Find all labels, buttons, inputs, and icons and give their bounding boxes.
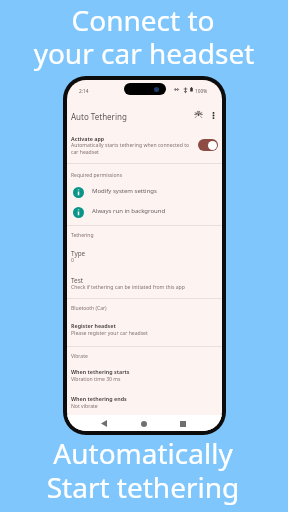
- staticText: Auto Tethering: [71, 111, 127, 122]
- button[interactable]: When tethering ends: [67, 392, 222, 412]
- button[interactable]: Recents: [175, 415, 191, 431]
- button[interactable]: Activate app: [67, 130, 222, 160]
- button[interactable]: Report a bug: [192, 108, 205, 121]
- button[interactable]: More options: [207, 109, 220, 122]
- staticText: 100%: [195, 88, 208, 95]
- button[interactable]: Modify system settings: [67, 185, 222, 199]
- staticText: When tethering starts: [71, 368, 130, 375]
- staticText: 2:14: [79, 88, 89, 95]
- staticText: Modify system settings: [92, 187, 157, 195]
- staticText: Automatically starts tethering when conn…: [71, 142, 190, 156]
- button[interactable]: Back: [96, 415, 112, 431]
- staticText: Always run in background: [92, 207, 166, 215]
- staticText: Connect to: [0, 1, 287, 39]
- staticText: Vibration time 30 ms: [71, 376, 121, 383]
- staticText: Please register your car headset: [71, 330, 148, 337]
- staticText: Required permissions: [71, 172, 123, 179]
- staticText: 0: [71, 257, 74, 264]
- staticText: Type: [71, 249, 86, 258]
- staticText: Start tethering: [0, 468, 287, 506]
- staticText: Not vibrate: [71, 403, 98, 410]
- button[interactable]: Type: [67, 246, 222, 266]
- staticText: When tethering ends: [71, 395, 127, 402]
- button[interactable]: Home: [136, 415, 152, 431]
- staticText: your car headset: [0, 34, 288, 72]
- staticText: Test: [71, 276, 84, 285]
- staticText: Register headset: [71, 322, 116, 329]
- button[interactable]: Always run in background: [67, 205, 222, 219]
- button[interactable]: Register headset: [67, 319, 222, 339]
- staticText: Activate app: [71, 135, 105, 142]
- staticText: Tethering: [71, 232, 94, 239]
- staticText: Check if tethering can be initiated from…: [71, 284, 185, 291]
- staticText: Bluetooth (Car): [71, 305, 107, 312]
- staticText: Vibrate: [71, 353, 88, 360]
- staticText: Automatically: [0, 434, 287, 472]
- button[interactable]: When tethering starts: [67, 365, 222, 385]
- button[interactable]: Test: [67, 273, 222, 293]
